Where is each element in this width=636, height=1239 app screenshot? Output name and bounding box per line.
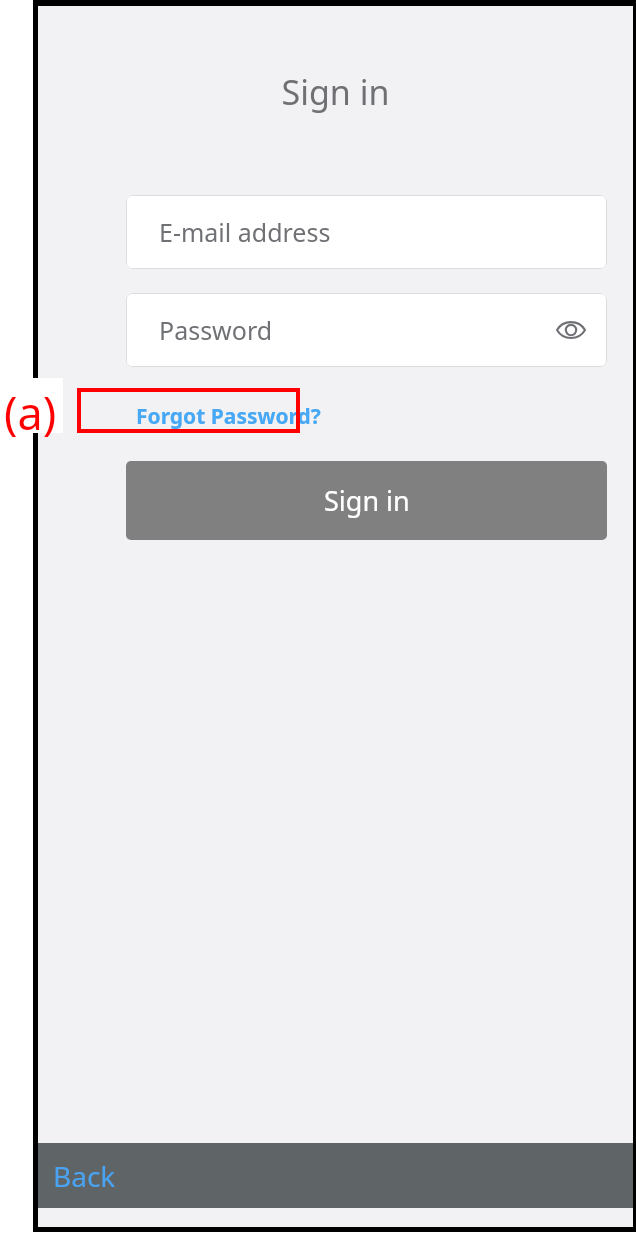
button[interactable]: Sign in: [126, 461, 607, 540]
staticText: Sign in: [324, 482, 410, 519]
staticText: Password: [159, 313, 273, 347]
button[interactable]: Forgot Password?: [126, 394, 343, 438]
staticText: Forgot Password?: [136, 402, 321, 431]
button[interactable]: Show password: [549, 308, 593, 352]
staticText: Sign in: [38, 69, 633, 115]
button[interactable]: Back: [38, 1143, 187, 1208]
staticText: (a): [4, 382, 57, 443]
button[interactable]: E-mail address: [126, 195, 607, 269]
button[interactable]: Password: [126, 293, 607, 367]
staticText: Back: [53, 1157, 116, 1195]
staticText: E-mail address: [159, 215, 331, 249]
